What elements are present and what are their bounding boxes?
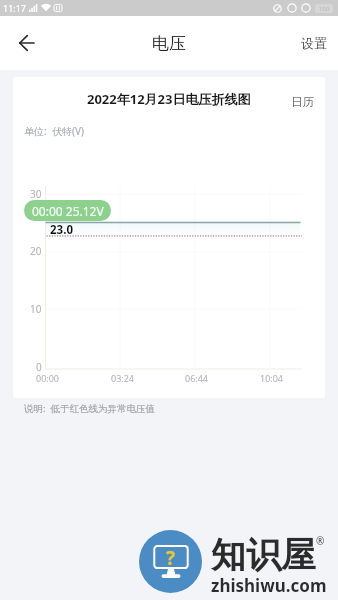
staticText: 设置 [301,35,327,51]
staticText: 说明: 低于红色线为异常电压值 [24,402,155,415]
staticText: 00:00 [36,372,60,384]
staticText: 2022年12月23日电压折线图 [87,90,251,108]
staticText: 10:04 [260,372,284,384]
staticText: 电压 [152,33,186,54]
staticText: 03:24 [111,372,135,384]
staticText: ? [166,545,176,571]
staticText: 11:17 [3,2,27,14]
staticText: 23.0 [50,222,73,238]
staticText: 知识屋 [211,533,316,577]
staticText: 10 [30,302,42,316]
staticText: 20 [30,244,42,258]
button[interactable]: 设置 [290,25,338,61]
staticText: zhishiwu.com [211,574,327,597]
staticText: 30 [30,187,42,201]
staticText: 单位: 伏特(V) [24,124,84,138]
staticText: 100 [319,5,330,13]
staticText: 00:00 25.12V [32,203,104,219]
staticText: 0 [36,360,42,374]
staticText: ® [316,534,325,548]
staticText: 日历 [291,95,314,109]
staticText: 06:44 [185,372,209,384]
button[interactable]: Back [9,26,43,60]
button[interactable]: 日历 [280,90,325,114]
